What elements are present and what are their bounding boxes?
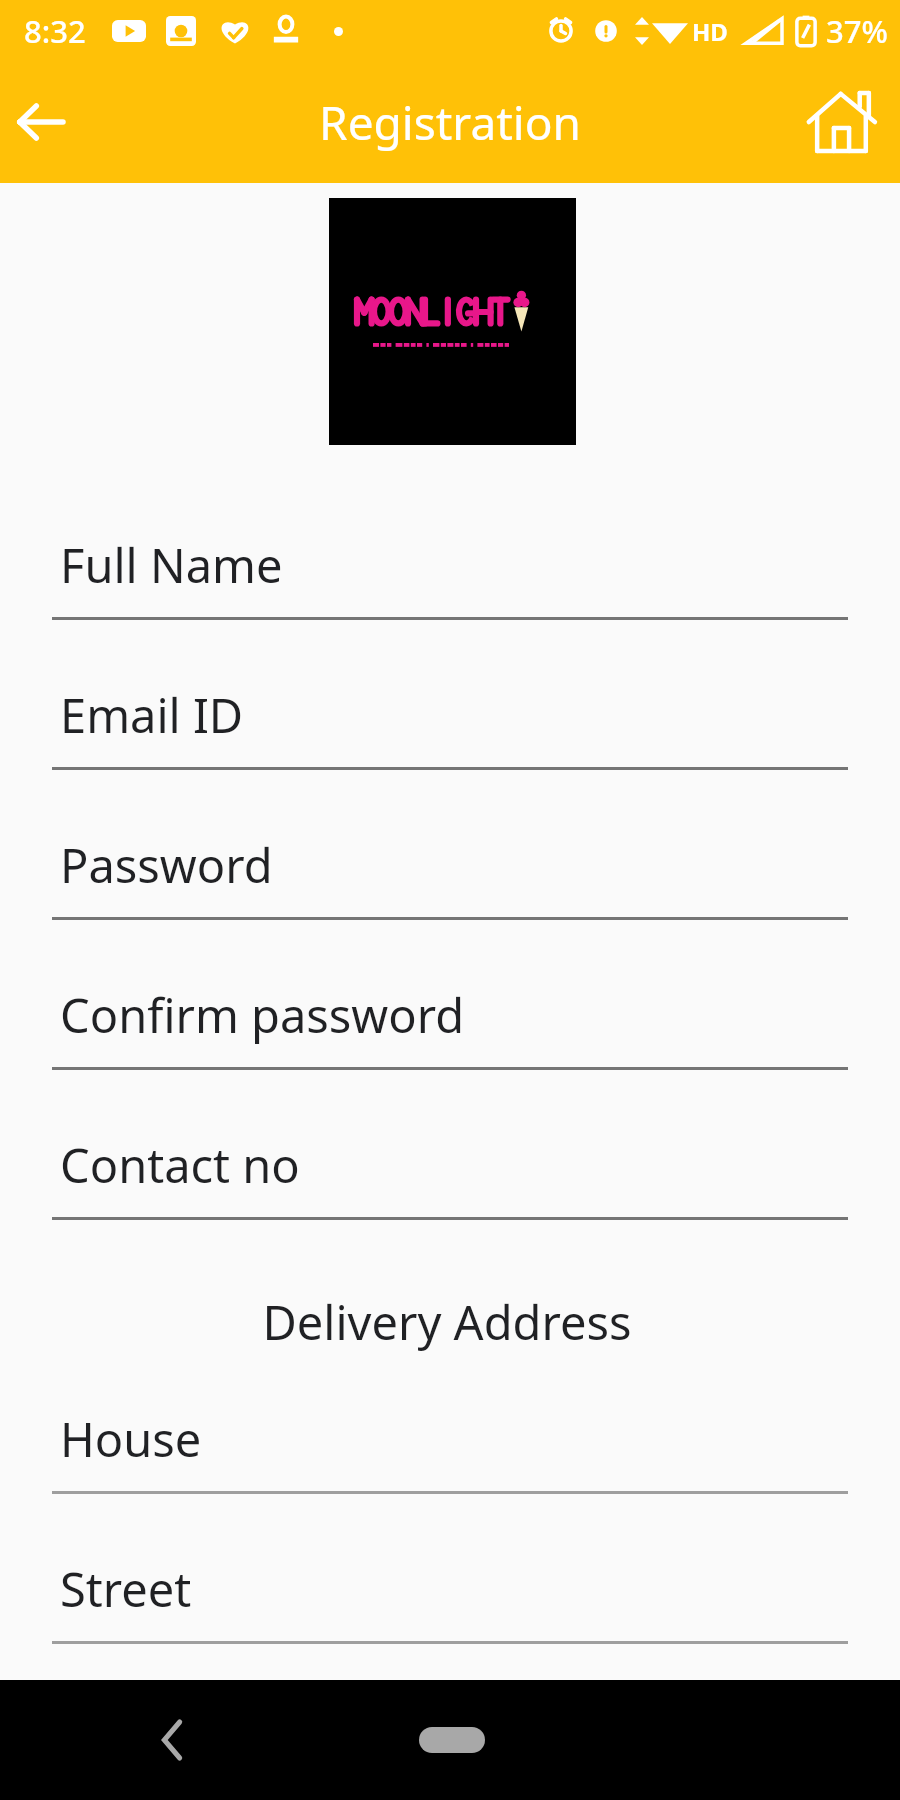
staticText: Password	[60, 833, 273, 897]
button[interactable]: Confirm password	[52, 983, 848, 1070]
staticText: Registration	[319, 91, 581, 154]
staticText: Confirm password	[60, 983, 465, 1047]
button[interactable]: Back	[4, 86, 76, 158]
staticText: Street	[60, 1557, 192, 1621]
button[interactable]: Full Name	[52, 533, 848, 620]
button[interactable]: Street	[52, 1557, 848, 1644]
staticText: Delivery Address	[0, 1290, 894, 1354]
button[interactable]: House	[52, 1407, 848, 1494]
staticText: 37%	[826, 10, 888, 52]
button[interactable]: Home	[392, 1710, 512, 1770]
staticText: Contact no	[60, 1133, 300, 1197]
button[interactable]: Home	[800, 79, 886, 165]
button[interactable]: Password	[52, 833, 848, 920]
staticText: 8:32	[24, 10, 86, 52]
staticText: House	[60, 1407, 202, 1471]
button[interactable]: Back	[130, 1698, 214, 1782]
button[interactable]: Email ID	[52, 683, 848, 770]
staticText: HD	[692, 15, 728, 48]
staticText: Full Name	[60, 533, 283, 597]
staticText: Email ID	[60, 683, 244, 747]
button[interactable]: Contact no	[52, 1133, 848, 1220]
